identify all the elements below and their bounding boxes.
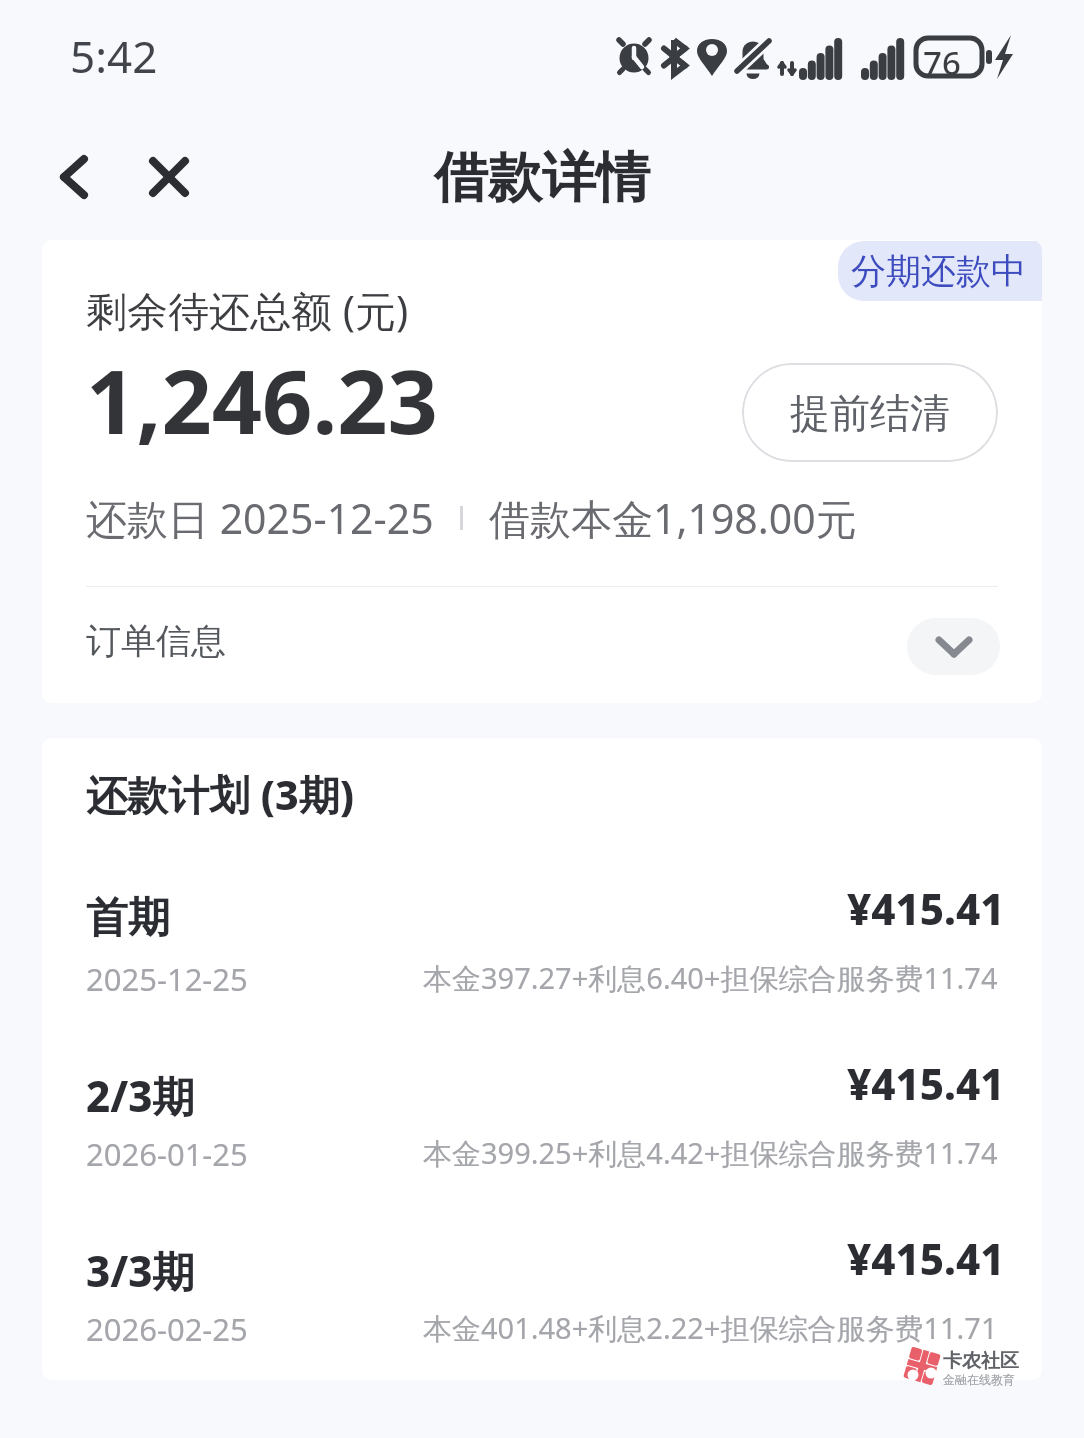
button[interactable]: 2/3期 bbox=[42, 1068, 1042, 1188]
staticText: 5:42 bbox=[70, 26, 158, 86]
staticText: 借款详情 bbox=[434, 144, 650, 212]
button[interactable]: 首期 bbox=[42, 893, 1042, 1013]
staticText: 本金397.27+利息6.40+担保综合服务费11.74 bbox=[423, 958, 998, 998]
staticText: 2/3期 bbox=[86, 1067, 195, 1124]
staticText: 卡农社区 bbox=[943, 1349, 1019, 1373]
staticText: 本金401.48+利息2.22+担保综合服务费11.71 bbox=[423, 1308, 998, 1348]
staticText: 剩余待还总额 (元) bbox=[86, 282, 409, 338]
staticText: 3/3期 bbox=[86, 1242, 195, 1299]
staticText: ¥415.41 bbox=[847, 1230, 1005, 1287]
staticText: ¥415.41 bbox=[847, 880, 1005, 937]
staticText: 2026-02-25 bbox=[86, 1308, 248, 1350]
staticText: 2026-01-25 bbox=[86, 1133, 248, 1175]
staticText: ¥415.41 bbox=[847, 1055, 1005, 1112]
staticText: 1,246.23 bbox=[86, 340, 438, 460]
staticText: 提前结清 bbox=[790, 388, 950, 438]
button[interactable]: Back bbox=[38, 142, 110, 212]
staticText: 借款本金1,198.00元 bbox=[489, 490, 857, 546]
button[interactable]: 3/3期 bbox=[42, 1243, 1042, 1363]
button[interactable]: Close bbox=[133, 142, 205, 212]
staticText: 本金399.25+利息4.42+担保综合服务费11.74 bbox=[423, 1133, 998, 1173]
staticText: 还款计划 (3期) bbox=[86, 766, 354, 822]
staticText: 76 bbox=[923, 40, 961, 85]
button[interactable]: 提前结清 bbox=[742, 363, 998, 462]
other: Expand order info bbox=[907, 618, 1000, 675]
staticText: 订单信息 bbox=[86, 619, 226, 663]
staticText: 首期 bbox=[86, 892, 170, 945]
staticText: 金融在线教育 bbox=[943, 1372, 1015, 1387]
staticText: 2025-12-25 bbox=[86, 958, 248, 1000]
staticText: 分期还款中 bbox=[851, 249, 1026, 293]
button[interactable]: 订单信息 bbox=[42, 600, 1042, 692]
staticText: 还款日 2025-12-25 bbox=[86, 490, 434, 546]
